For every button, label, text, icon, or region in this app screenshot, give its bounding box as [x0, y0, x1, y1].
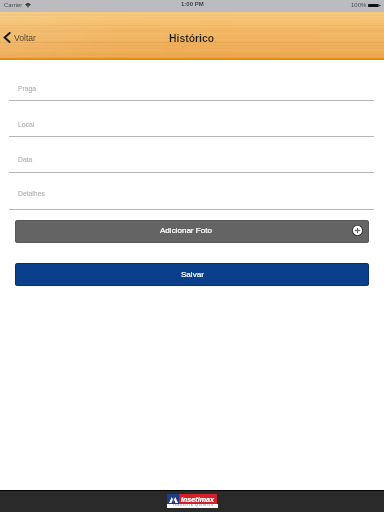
- button[interactable]: [9, 100, 374, 136]
- staticText: Adicionar Foto: [160, 226, 212, 235]
- staticText: Indústria Química: [173, 503, 214, 507]
- button[interactable]: [9, 64, 374, 100]
- staticText: Salvar: [181, 270, 204, 279]
- button[interactable]: [9, 172, 374, 209]
- staticText: Insetimax: [181, 496, 214, 504]
- staticText: Data: [18, 156, 33, 164]
- other: Adicionar Foto: [352, 225, 363, 236]
- button[interactable]: [9, 136, 374, 172]
- button[interactable]: Voltar: [2, 27, 42, 47]
- staticText: 1:00 PM: [181, 1, 204, 8]
- button[interactable]: Insetimax Indústria Química: [167, 494, 218, 508]
- staticText: Histórico: [169, 33, 215, 45]
- staticText: Local: [18, 121, 35, 129]
- staticText: Praga: [18, 85, 37, 93]
- button[interactable]: [15, 220, 369, 243]
- staticText: Detalhes: [18, 190, 45, 198]
- staticText: Voltar: [14, 33, 36, 43]
- staticText: 100%: [351, 2, 367, 9]
- button[interactable]: [15, 263, 369, 286]
- staticText: Carrier: [4, 2, 23, 9]
